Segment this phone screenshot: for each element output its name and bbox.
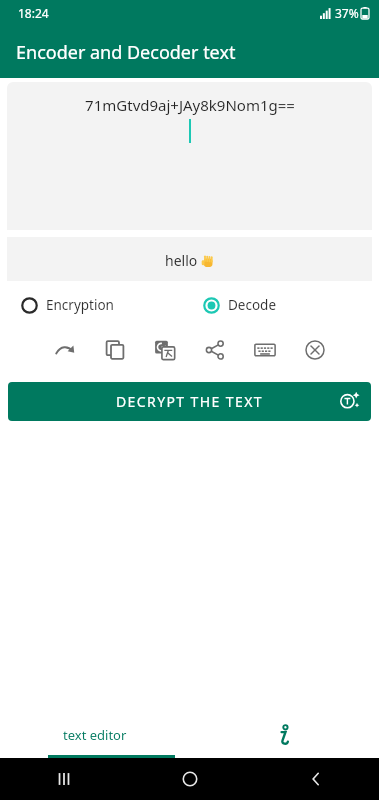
- staticText: Encoder and Decoder text: [16, 40, 236, 65]
- staticText: 18:24: [18, 5, 49, 21]
- staticText: 71mGtvd9aj+JAy8k9Nom1g==: [85, 95, 295, 115]
- button[interactable]: hello: [7, 237, 372, 281]
- staticText: Encryption: [46, 296, 114, 314]
- button[interactable]: Back: [253, 758, 379, 800]
- button[interactable]: Keyboard: [247, 332, 283, 368]
- button[interactable]: text editor: [0, 712, 189, 758]
- staticText: DECRYPT THE TEXT: [116, 392, 263, 411]
- staticText: text editor: [63, 726, 127, 744]
- button[interactable]: Recents: [0, 758, 127, 800]
- button[interactable]: Encryption: [21, 281, 189, 329]
- button[interactable]: DECRYPT THE TEXT: [8, 382, 371, 421]
- button[interactable]: Decode: [203, 281, 372, 329]
- button[interactable]: Clear: [297, 332, 333, 368]
- staticText: 37%: [335, 5, 359, 21]
- button[interactable]: Share: [197, 332, 233, 368]
- button[interactable]: Home: [127, 758, 253, 800]
- button[interactable]: Info: [189, 712, 379, 758]
- button[interactable]: Copy: [97, 332, 133, 368]
- staticText: Decode: [228, 296, 277, 314]
- button[interactable]: Redo: [47, 332, 83, 368]
- staticText: hello: [165, 251, 201, 270]
- button[interactable]: 71mGtvd9aj+JAy8k9Nom1g==: [7, 82, 372, 230]
- button[interactable]: Translate: [147, 332, 183, 368]
